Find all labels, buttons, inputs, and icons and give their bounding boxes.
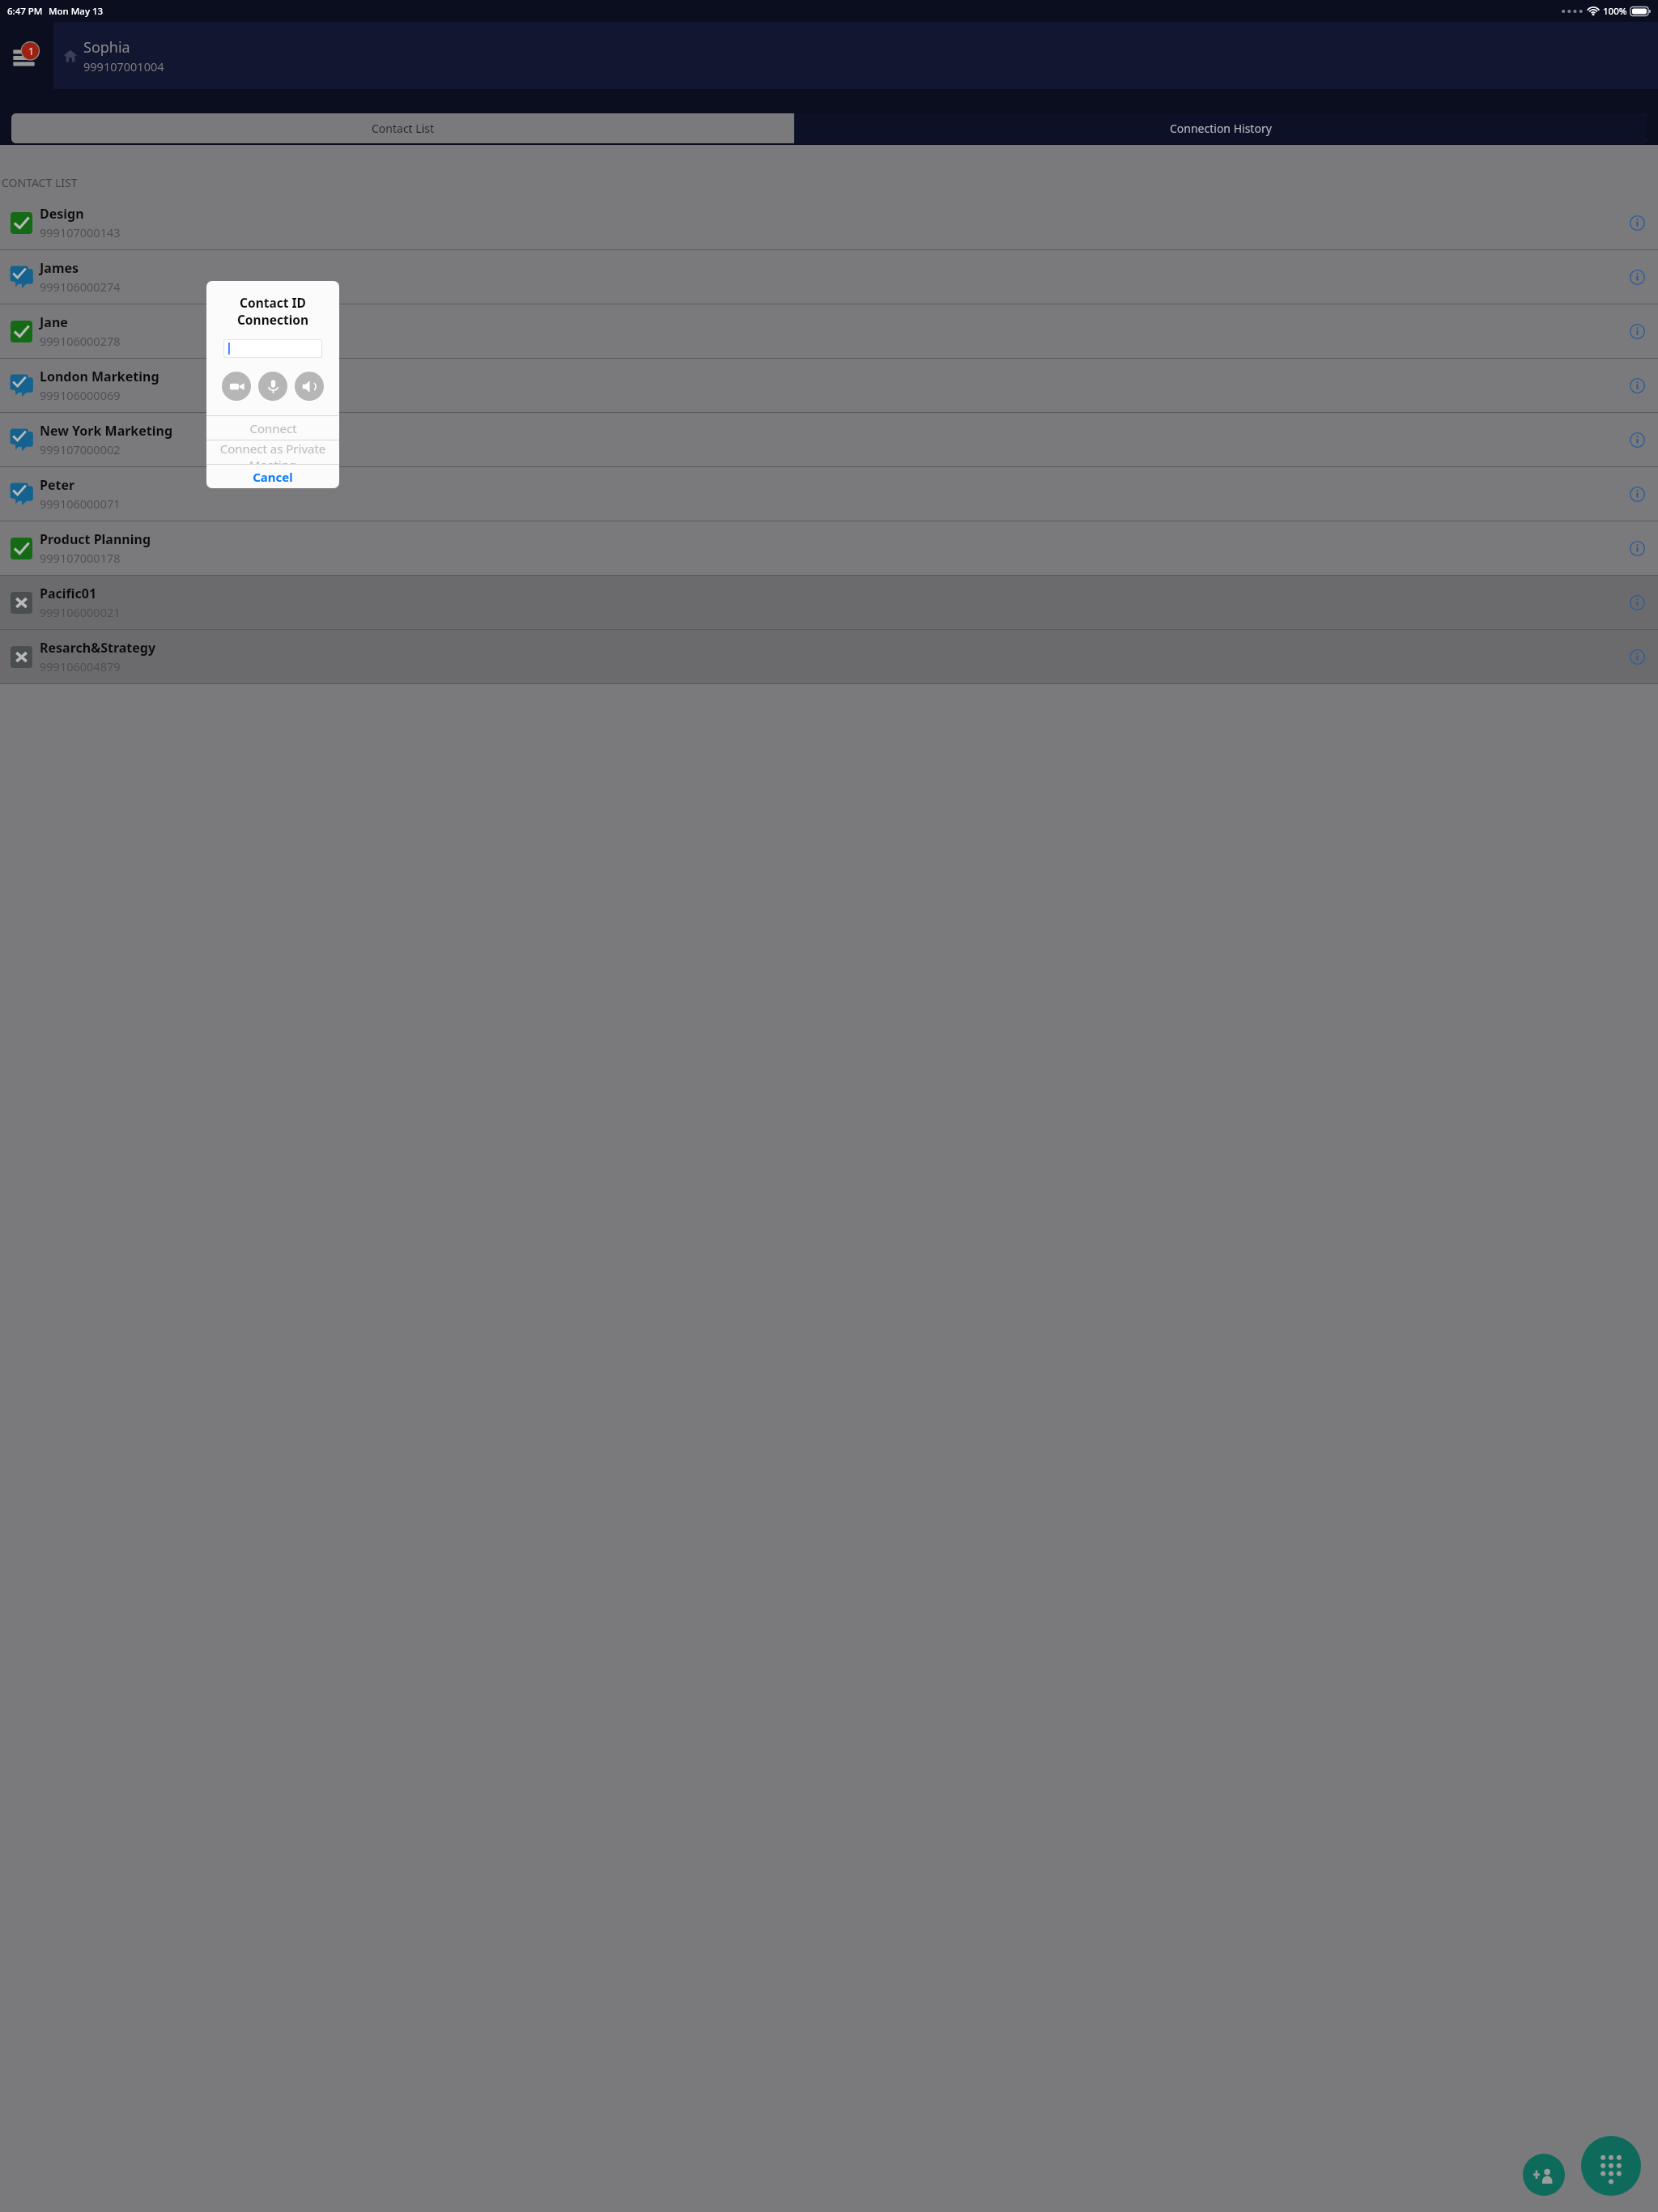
button[interactable]: Info (1616, 359, 1658, 412)
staticText: Product Planning (40, 530, 151, 548)
button[interactable]: Design (0, 196, 1658, 249)
staticText: Mon May 13 (49, 5, 104, 18)
button[interactable]: Resarch&Strategy (0, 630, 1658, 683)
button[interactable]: Connection History (794, 113, 1647, 143)
staticText: Contact List (372, 121, 434, 136)
button[interactable]: Info (1616, 413, 1658, 466)
staticText: Jane (40, 313, 68, 331)
staticText: 999106000274 (40, 279, 121, 295)
button[interactable]: Contact List (11, 113, 794, 143)
button[interactable]: Peter (0, 467, 1658, 521)
staticText: Design (40, 205, 84, 223)
button[interactable]: Product Planning (0, 521, 1658, 575)
button[interactable]: Speaker (295, 372, 324, 401)
button[interactable]: Info (1616, 467, 1658, 521)
staticText: 999106000071 (40, 496, 121, 512)
staticText: Connection History (1170, 121, 1272, 136)
staticText: CONTACT LIST (2, 175, 78, 190)
button[interactable]: Menu (0, 22, 53, 89)
button[interactable]: Add contact (1523, 2154, 1565, 2196)
button[interactable]: Dialpad (1581, 2136, 1641, 2196)
staticText: Contact ID Connection (206, 294, 339, 328)
button[interactable]: Info (1616, 250, 1658, 304)
staticText: 1 (28, 45, 34, 57)
button[interactable]: James (0, 250, 1658, 304)
staticText: 999107000178 (40, 550, 121, 566)
staticText: 999106004879 (40, 658, 121, 674)
button[interactable]: Info (1616, 304, 1658, 358)
button[interactable]: London Marketing (0, 359, 1658, 412)
staticText: Sophia (83, 37, 130, 57)
staticText: James (40, 259, 79, 277)
staticText: Resarch&Strategy (40, 639, 156, 657)
button[interactable]: Microphone (258, 372, 287, 401)
staticText: New York Marketing (40, 422, 173, 440)
button[interactable]: Connect (206, 416, 339, 440)
staticText: London Marketing (40, 368, 159, 385)
staticText: 100% (1603, 5, 1627, 18)
button[interactable]: New York Marketing (0, 413, 1658, 466)
button[interactable]: Info (1616, 576, 1658, 629)
staticText: Peter (40, 476, 75, 494)
button[interactable]: Pacific01 (0, 576, 1658, 629)
staticText: 6:47 PM (7, 5, 43, 18)
staticText: 999106000069 (40, 387, 121, 403)
staticText: 999107001004 (83, 58, 164, 74)
button[interactable]: Connect as Private Meeting (206, 440, 339, 464)
button[interactable]: Info (1616, 196, 1658, 249)
staticText: 999107000002 (40, 441, 121, 457)
button[interactable]: Cancel (206, 465, 339, 488)
button[interactable]: Info (1616, 521, 1658, 575)
button[interactable] (223, 339, 322, 358)
button[interactable]: Jane (0, 304, 1658, 358)
button[interactable]: Info (1616, 630, 1658, 683)
staticText: 999106000021 (40, 604, 121, 620)
staticText: Connect as Private Meeting (206, 440, 339, 464)
staticText: 999107000143 (40, 224, 121, 240)
staticText: Connect (249, 420, 297, 436)
button[interactable]: Video (222, 372, 251, 401)
staticText: Cancel (253, 469, 293, 485)
staticText: Pacific01 (40, 585, 97, 602)
staticText: 999106000278 (40, 333, 121, 349)
